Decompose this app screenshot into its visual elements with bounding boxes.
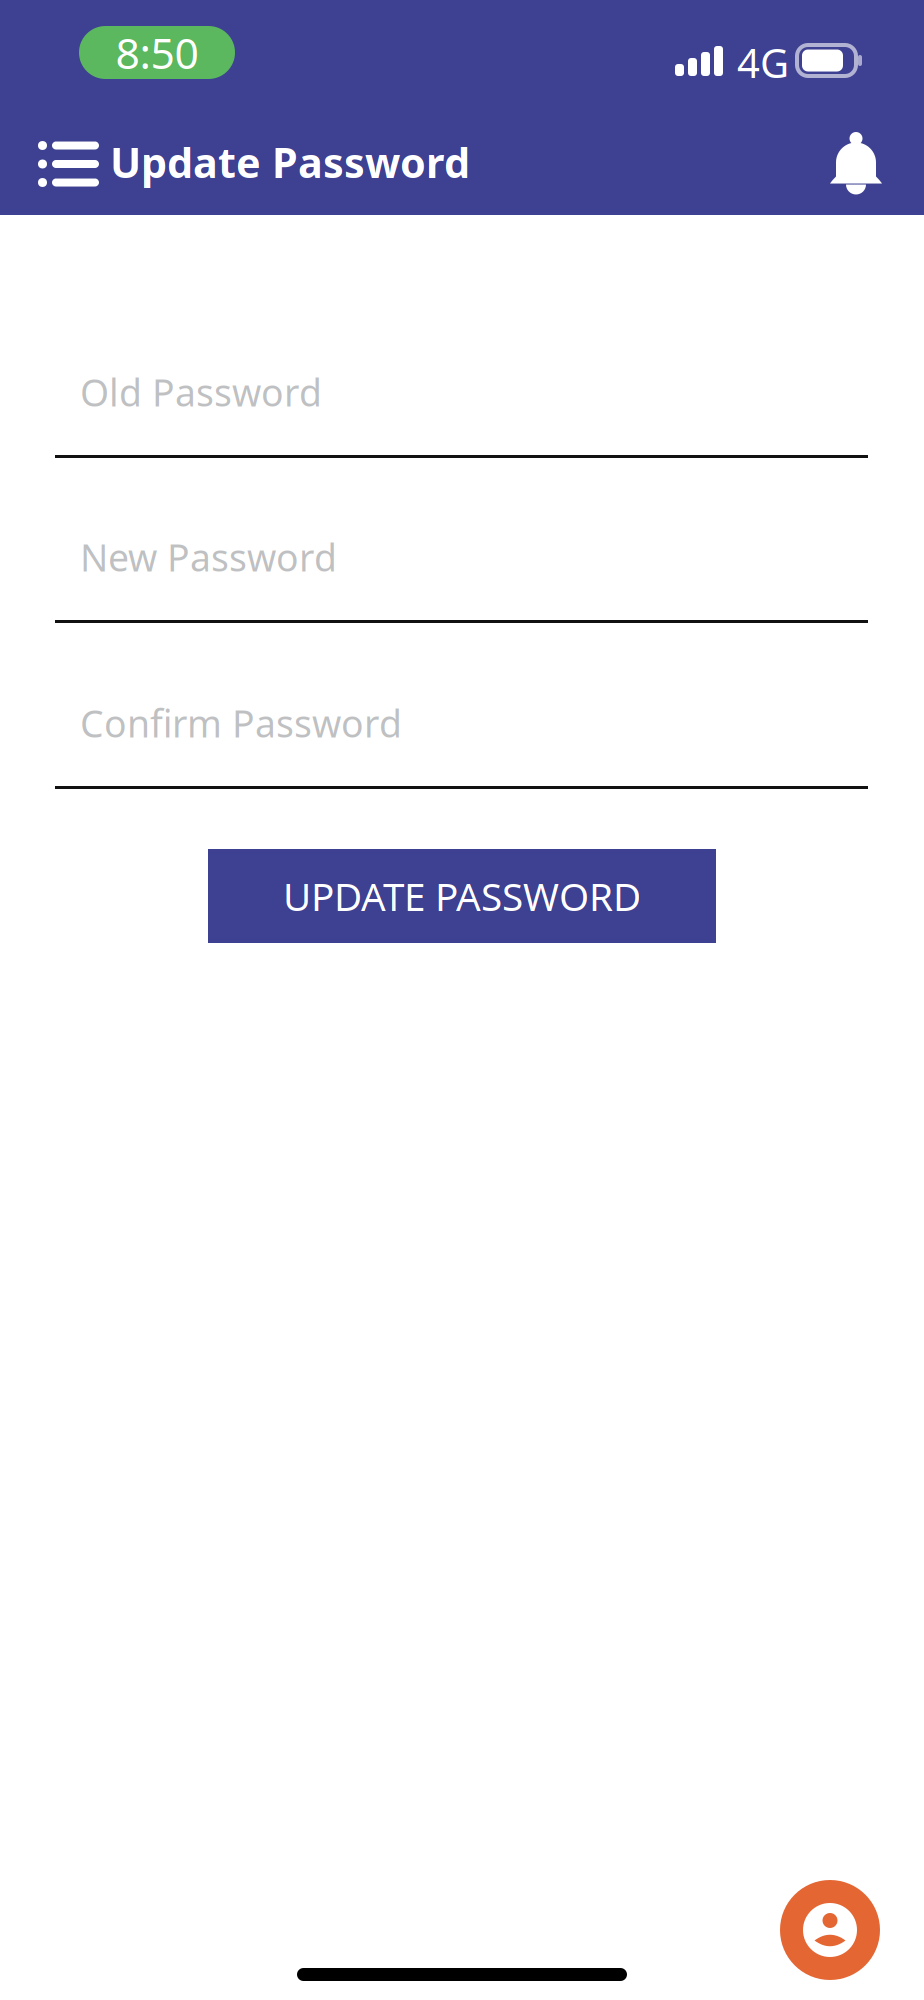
- staticText: 8:50: [115, 24, 198, 81]
- button[interactable]: Menu: [0, 106, 110, 214]
- button[interactable]: Notifications: [804, 104, 924, 215]
- button[interactable]: UPDATE PASSWORD: [208, 849, 716, 943]
- button[interactable]: Old Password: [55, 374, 868, 458]
- button[interactable]: Confirm Password: [55, 705, 868, 789]
- staticText: UPDATE PASSWORD: [283, 870, 641, 922]
- staticText: 4G: [737, 36, 789, 89]
- staticText: Confirm Password: [80, 698, 402, 748]
- button[interactable]: New Password: [55, 539, 868, 623]
- staticText: New Password: [80, 532, 337, 582]
- staticText: Old Password: [80, 367, 322, 417]
- button[interactable]: Profile: [780, 1880, 880, 1980]
- staticText: Update Password: [110, 135, 470, 189]
